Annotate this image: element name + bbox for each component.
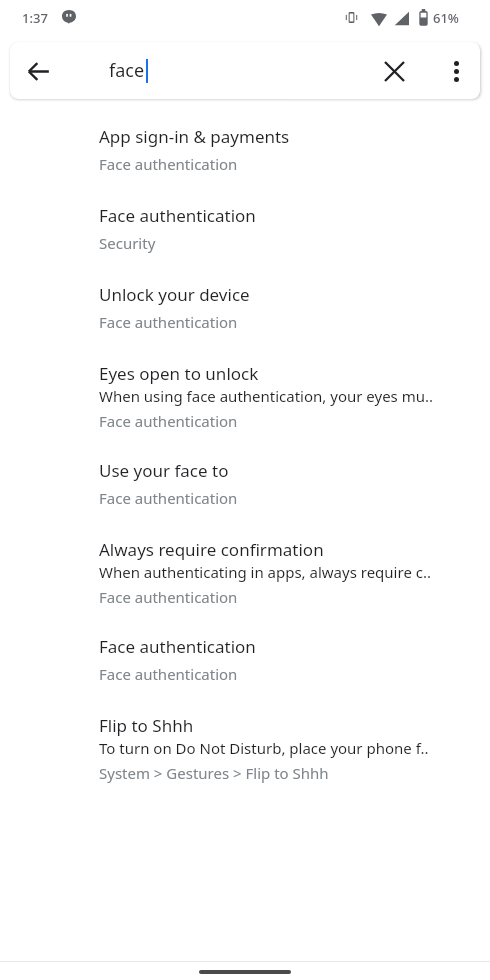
button[interactable]: Always require confirmation xyxy=(0,538,490,607)
button[interactable]: Eyes open to unlock xyxy=(0,362,490,431)
staticText: Security xyxy=(99,233,156,253)
button[interactable]: Flip to Shhh xyxy=(0,714,490,783)
staticText: System > Gestures > Flip to Shhh xyxy=(99,763,329,783)
staticText: Use your face to xyxy=(99,459,229,482)
button[interactable]: Face authentication xyxy=(0,635,490,684)
staticText: Face authentication xyxy=(99,411,238,431)
staticText: Unlock your device xyxy=(99,283,250,306)
staticText: Face authentication xyxy=(99,312,238,332)
staticText: Face authentication xyxy=(99,587,238,607)
button[interactable]: Unlock your device xyxy=(0,283,490,332)
button[interactable]: More options xyxy=(432,47,480,95)
staticText: 61% xyxy=(433,9,459,27)
staticText: 1:37 xyxy=(22,9,48,27)
staticText: When authenticating in apps, always requ… xyxy=(99,562,431,582)
staticText: Always require confirmation xyxy=(99,538,324,561)
staticText: Face authentication xyxy=(99,635,256,658)
button[interactable]: App sign-in & payments xyxy=(0,125,490,174)
button[interactable]: Face authentication xyxy=(0,204,490,253)
button[interactable]: Use your face to xyxy=(0,459,490,508)
staticText: App sign-in & payments xyxy=(99,125,290,148)
staticText: Face authentication xyxy=(99,664,238,684)
button[interactable]: Clear search xyxy=(370,47,418,95)
staticText: To turn on Do Not Disturb, place your ph… xyxy=(99,738,429,758)
button[interactable]: Navigate up xyxy=(10,43,66,99)
staticText: Face authentication xyxy=(99,204,256,227)
staticText: face xyxy=(109,58,145,83)
staticText: Face authentication xyxy=(99,154,238,174)
button[interactable]: Home gesture handle xyxy=(199,970,291,974)
staticText: When using face authentication, your eye… xyxy=(99,386,434,406)
staticText: Eyes open to unlock xyxy=(99,362,259,385)
staticText: Face authentication xyxy=(99,488,238,508)
staticText: Flip to Shhh xyxy=(99,714,194,737)
